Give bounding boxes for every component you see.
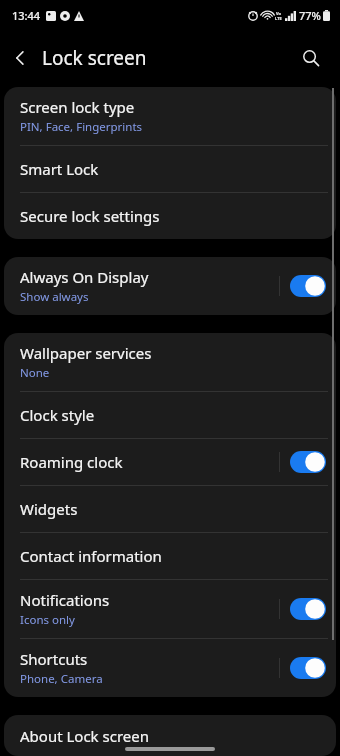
button[interactable]: Notifications: [4, 580, 336, 638]
staticText: Notifications: [20, 590, 110, 610]
staticText: Wallpaper services: [20, 343, 152, 363]
staticText: Show always: [20, 289, 89, 305]
button[interactable]: Always On Display: [4, 257, 336, 315]
button[interactable]: Shortcuts toggle: [290, 657, 326, 679]
button[interactable]: Clock style: [4, 392, 336, 438]
button[interactable]: Smart Lock: [4, 146, 336, 192]
staticText: Contact information: [20, 546, 162, 566]
staticText: About Lock screen: [20, 726, 149, 746]
staticText: PIN, Face, Fingerprints: [20, 119, 143, 135]
button[interactable]: Notifications toggle: [290, 598, 326, 620]
button[interactable]: Secure lock settings: [4, 193, 336, 239]
button[interactable]: Contact information: [4, 533, 336, 579]
button[interactable]: Wallpaper services: [4, 333, 336, 391]
button[interactable]: Shortcuts: [4, 639, 336, 697]
button[interactable]: Widgets: [4, 486, 336, 532]
staticText: Phone, Camera: [20, 671, 103, 687]
staticText: Clock style: [20, 405, 95, 425]
button[interactable]: Roaming clock: [4, 439, 336, 485]
staticText: 77%: [299, 8, 321, 23]
staticText: Secure lock settings: [20, 206, 160, 226]
staticText: 13:44: [12, 8, 41, 23]
staticText: Vo: [276, 11, 282, 16]
staticText: Lock screen: [42, 45, 147, 71]
staticText: Icons only: [20, 612, 75, 628]
staticText: Roaming clock: [20, 452, 123, 472]
button[interactable]: Roaming clock toggle: [290, 451, 326, 473]
button[interactable]: Always On Display toggle: [290, 275, 326, 297]
staticText: Smart Lock: [20, 159, 99, 179]
staticText: Screen lock type: [20, 97, 135, 117]
staticText: Always On Display: [20, 267, 149, 287]
button[interactable]: About Lock screen: [4, 715, 336, 756]
button[interactable]: Screen lock type: [4, 87, 336, 145]
staticText: LTE: [275, 16, 282, 21]
button[interactable]: Back: [0, 37, 42, 79]
staticText: None: [20, 365, 50, 381]
staticText: Widgets: [20, 499, 78, 519]
staticText: Shortcuts: [20, 649, 88, 669]
button[interactable]: Search: [290, 37, 332, 79]
